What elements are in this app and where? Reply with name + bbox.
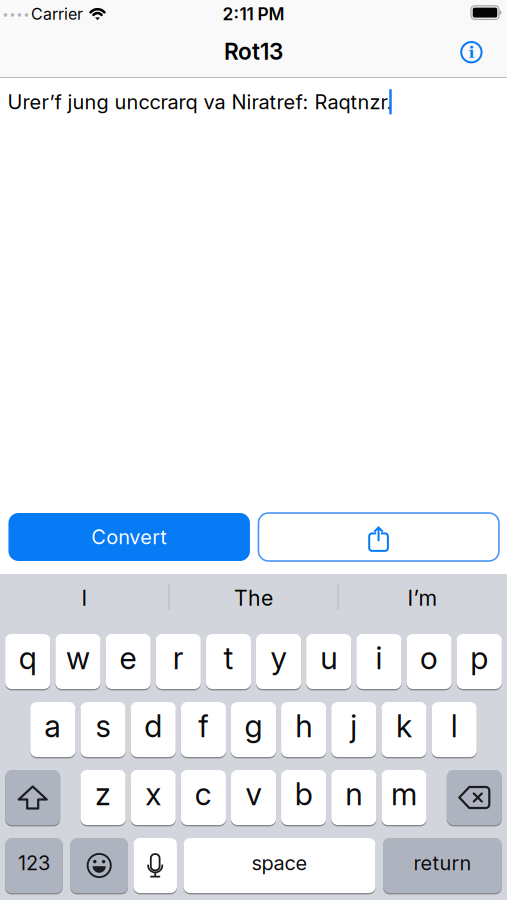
staticText: Urer’f jung unccrarq va Niratref: Raqtnz…: [7, 90, 392, 114]
staticText: w: [66, 640, 90, 676]
button[interactable]: Info: [460, 41, 482, 63]
button[interactable]: n: [331, 770, 376, 825]
button[interactable]: v: [231, 770, 276, 825]
button[interactable]: l: [432, 702, 477, 757]
staticText: k: [396, 708, 412, 744]
button[interactable]: y: [256, 634, 301, 689]
button[interactable]: Share: [258, 513, 499, 561]
staticText: h: [295, 708, 312, 744]
button[interactable]: h: [281, 702, 326, 757]
staticText: Carrier: [31, 5, 83, 23]
button[interactable]: g: [231, 702, 276, 757]
staticText: y: [271, 640, 287, 676]
button[interactable]: 123: [5, 838, 63, 893]
staticText: z: [95, 776, 111, 812]
staticText: i: [468, 42, 474, 63]
button[interactable]: x: [131, 770, 176, 825]
staticText: space: [251, 851, 307, 875]
button[interactable]: w: [55, 634, 101, 689]
button[interactable]: t: [206, 634, 251, 689]
staticText: e: [120, 640, 137, 676]
staticText: b: [295, 776, 313, 812]
button[interactable]: Emoji: [70, 838, 128, 893]
button[interactable]: Convert: [8, 513, 250, 561]
staticText: Rot13: [224, 38, 283, 65]
staticText: u: [320, 640, 337, 676]
staticText: d: [144, 708, 162, 744]
button[interactable]: j: [331, 702, 376, 757]
staticText: I: [81, 585, 87, 611]
staticText: m: [391, 776, 417, 812]
button[interactable]: Shift: [5, 770, 60, 825]
staticText: r: [173, 640, 184, 676]
button[interactable]: return: [383, 838, 502, 893]
staticText: t: [223, 640, 233, 676]
staticText: x: [145, 776, 161, 812]
staticText: p: [470, 640, 488, 676]
staticText: v: [245, 776, 261, 812]
staticText: q: [19, 640, 37, 676]
button[interactable]: The: [173, 574, 333, 622]
button[interactable]: a: [30, 702, 75, 757]
staticText: a: [44, 708, 61, 744]
staticText: c: [195, 776, 212, 812]
button[interactable]: I: [4, 574, 164, 622]
staticText: i: [375, 640, 382, 676]
staticText: s: [95, 708, 110, 744]
button[interactable]: k: [381, 702, 427, 757]
button[interactable]: Dictate: [133, 838, 177, 893]
button[interactable]: z: [80, 770, 126, 825]
button[interactable]: d: [131, 702, 176, 757]
staticText: The: [234, 585, 273, 611]
button[interactable]: m: [381, 770, 427, 825]
button[interactable]: b: [281, 770, 326, 825]
staticText: I’m: [407, 585, 437, 611]
button[interactable]: i: [356, 634, 401, 689]
button[interactable]: f: [181, 702, 226, 757]
button[interactable]: Delete: [447, 770, 502, 825]
staticText: o: [420, 640, 438, 676]
staticText: f: [198, 708, 208, 744]
button[interactable]: e: [105, 634, 151, 689]
button[interactable]: s: [80, 702, 126, 757]
button[interactable]: o: [406, 634, 452, 689]
staticText: 123: [18, 851, 50, 875]
staticText: Convert: [91, 525, 167, 549]
button[interactable]: space: [183, 838, 375, 893]
button[interactable]: q: [5, 634, 50, 689]
staticText: j: [350, 708, 357, 744]
staticText: n: [345, 776, 362, 812]
staticText: 2:11 PM: [222, 4, 284, 24]
staticText: l: [451, 708, 458, 744]
button[interactable]: p: [457, 634, 502, 689]
staticText: g: [244, 708, 262, 744]
button[interactable]: c: [181, 770, 226, 825]
button[interactable]: I’m: [342, 574, 502, 622]
button[interactable]: u: [306, 634, 351, 689]
button[interactable]: r: [156, 634, 201, 689]
staticText: return: [413, 851, 471, 875]
